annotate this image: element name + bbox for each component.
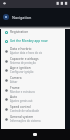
staticText: Ajustes gerais aut: [10, 99, 33, 103]
button[interactable]: General system: [5, 114, 64, 124]
staticText: Ativar: [10, 80, 18, 84]
staticText: Configurar ignição: [10, 70, 34, 74]
staticText: Monitor e estrutura: [10, 90, 35, 94]
staticText: Navigation: [12, 15, 32, 20]
staticText: Data e horário: [10, 47, 32, 51]
button[interactable]: Registration: [5, 27, 64, 37]
staticText: Ajustar data e hora do sis: [10, 51, 42, 55]
staticText: Get the Monkey app now: [10, 39, 48, 43]
staticText: Informações do sistema: [10, 119, 41, 123]
staticText: Controle de velocidade: [10, 109, 39, 113]
staticText: General system: [10, 115, 34, 119]
button[interactable]: Get the Monkey app now: [5, 36, 64, 46]
button[interactable]: Home: [33, 133, 37, 136]
button[interactable]: Auto: [5, 94, 64, 104]
staticText: Speed control: [10, 105, 31, 109]
staticText: Frame: [10, 86, 20, 90]
button[interactable]: Navigation: [0, 8, 70, 26]
button[interactable]: Speed control: [5, 104, 64, 114]
staticText: Capacete e airbags: [10, 57, 39, 61]
button[interactable]: Capacete e airbags: [5, 56, 64, 66]
button[interactable]: Age e ignition: [5, 65, 64, 75]
staticText: Auto: [10, 95, 18, 99]
staticText: Registration: [10, 30, 29, 34]
button[interactable]: Frame: [5, 85, 64, 95]
button[interactable]: Data e horário: [5, 46, 64, 56]
button[interactable]: Camera: [5, 75, 64, 85]
staticText: Sistema de proteção: [10, 61, 36, 65]
staticText: Age e ignition: [10, 66, 31, 70]
staticText: Camera: [10, 76, 22, 80]
